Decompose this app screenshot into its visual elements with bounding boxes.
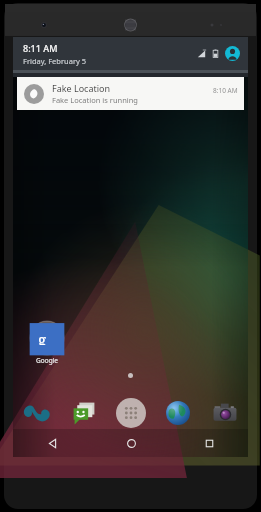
staticText: 8:10 AM: [213, 86, 238, 95]
button[interactable]: Camera: [201, 391, 248, 435]
staticText: Fake Location: [52, 82, 111, 94]
staticText: Friday, February 5: [23, 56, 87, 66]
staticText: Google: [36, 356, 58, 365]
button[interactable]: Back: [13, 429, 92, 457]
button[interactable]: User profile: [225, 46, 240, 61]
button[interactable]: Apps: [107, 391, 154, 435]
button[interactable]: Phone: [13, 391, 60, 435]
button[interactable]: Google: [22, 319, 72, 367]
button[interactable]: Recents: [170, 429, 248, 457]
staticText: 8:11 AM: [23, 42, 58, 54]
button[interactable]: Home: [92, 429, 170, 457]
button[interactable]: Fake Location: [17, 77, 244, 110]
button[interactable]: Messaging: [60, 391, 107, 435]
staticText: Fake Location is running: [52, 95, 138, 105]
button[interactable]: Browser: [154, 391, 201, 435]
staticText: g: [38, 329, 47, 345]
